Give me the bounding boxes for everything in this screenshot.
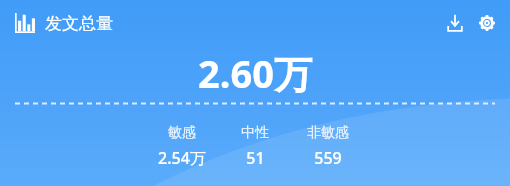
staticText: 非敏感 bbox=[307, 124, 349, 142]
staticText: 敏感 bbox=[168, 124, 196, 142]
staticText: 2.54万 bbox=[158, 147, 206, 169]
button[interactable]: Statistics bbox=[14, 12, 36, 34]
staticText: 中性 bbox=[241, 124, 269, 142]
staticText: 2.60万 bbox=[198, 47, 312, 99]
staticText: 559 bbox=[314, 147, 342, 169]
button[interactable]: 敏感 bbox=[143, 124, 221, 169]
button[interactable]: 中性 bbox=[227, 124, 283, 169]
staticText: 发文总量 bbox=[45, 13, 113, 34]
button[interactable]: Download bbox=[442, 10, 468, 36]
staticText: 51 bbox=[246, 147, 265, 169]
button[interactable]: 非敏感 bbox=[289, 124, 367, 169]
button[interactable]: Settings bbox=[474, 10, 500, 36]
